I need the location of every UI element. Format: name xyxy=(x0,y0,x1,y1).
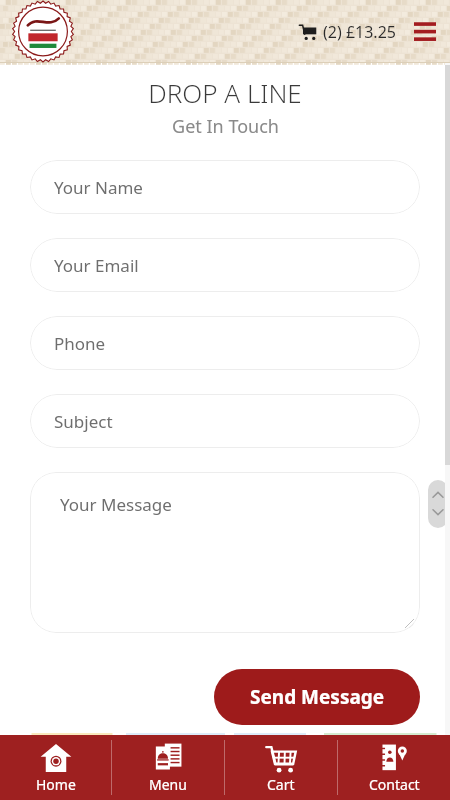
button[interactable]: Phone xyxy=(30,316,420,370)
staticText: Your Name xyxy=(54,176,143,199)
button[interactable]: Cart xyxy=(225,735,337,800)
button[interactable]: Menu xyxy=(112,735,224,800)
staticText: Send Message xyxy=(250,684,385,710)
button[interactable]: Subject xyxy=(30,394,420,448)
staticText: Get In Touch xyxy=(172,114,279,139)
other: Cart xyxy=(299,23,317,41)
button[interactable]: Send Message xyxy=(214,669,420,725)
button[interactable]: Home xyxy=(0,735,111,800)
staticText: DROP A LINE xyxy=(148,75,302,110)
staticText: Phone xyxy=(54,332,106,355)
staticText: Cart xyxy=(267,775,295,794)
button[interactable]: Your Name xyxy=(30,160,420,214)
staticText: Menu xyxy=(149,775,187,794)
button[interactable]: Your Message xyxy=(30,472,420,633)
button[interactable]: Scroll xyxy=(428,480,448,528)
staticText: Contact xyxy=(369,775,420,794)
button[interactable]: Soami's Salsa home xyxy=(10,0,76,63)
button[interactable]: Your Email xyxy=(30,238,420,292)
staticText: Home xyxy=(36,775,76,794)
staticText: Your Email xyxy=(54,254,139,277)
staticText: Your Message xyxy=(60,493,172,516)
button[interactable]: Cart xyxy=(297,17,398,47)
staticText: (2) £13.25 xyxy=(323,21,396,43)
button[interactable]: Menu xyxy=(412,19,438,45)
button[interactable]: Contact xyxy=(338,735,450,800)
staticText: Subject xyxy=(54,410,113,433)
